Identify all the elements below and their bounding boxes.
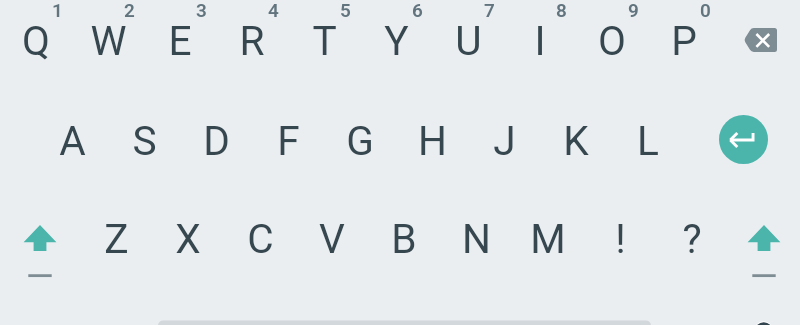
staticText: I bbox=[534, 17, 546, 65]
staticText: 3 bbox=[196, 0, 207, 21]
staticText: 0 bbox=[700, 0, 711, 21]
staticText: O bbox=[598, 17, 626, 65]
button[interactable]: T bbox=[288, 4, 360, 96]
button[interactable]: V bbox=[296, 198, 368, 294]
button[interactable]: C bbox=[224, 198, 296, 294]
staticText: H bbox=[418, 117, 447, 165]
button[interactable]: B bbox=[368, 198, 440, 294]
button[interactable]: S bbox=[108, 100, 180, 196]
staticText: ! bbox=[615, 215, 626, 263]
staticText: 2 bbox=[124, 0, 135, 21]
staticText: D bbox=[203, 117, 230, 165]
staticText: V bbox=[319, 215, 345, 263]
staticText: K bbox=[563, 117, 589, 165]
staticText: A bbox=[59, 117, 86, 165]
staticText: 9 bbox=[628, 0, 639, 21]
staticText: P bbox=[671, 17, 697, 65]
staticText: J bbox=[493, 117, 516, 165]
staticText: Y bbox=[384, 17, 409, 65]
staticText: S bbox=[132, 117, 157, 165]
button[interactable]: D bbox=[180, 100, 252, 196]
staticText: X bbox=[175, 215, 201, 263]
button[interactable]: Q bbox=[0, 4, 72, 96]
staticText: B bbox=[391, 215, 417, 263]
button[interactable]: N bbox=[440, 198, 512, 294]
staticText: F bbox=[277, 117, 300, 165]
staticText: T bbox=[312, 17, 337, 65]
button[interactable]: Delete bbox=[720, 4, 800, 96]
button[interactable]: H bbox=[396, 100, 468, 196]
button[interactable]: ? bbox=[656, 198, 728, 294]
staticText: 4 bbox=[268, 0, 279, 21]
button[interactable]: O bbox=[576, 4, 648, 96]
button[interactable]: W bbox=[72, 4, 144, 96]
button[interactable]: Enter bbox=[684, 100, 800, 196]
button[interactable]: ! bbox=[584, 198, 656, 294]
button[interactable]: K bbox=[540, 100, 612, 196]
button[interactable]: R bbox=[216, 4, 288, 96]
staticText: 6 bbox=[412, 0, 423, 21]
staticText: U bbox=[455, 17, 482, 65]
button[interactable]: Y bbox=[360, 4, 432, 96]
button[interactable]: Z bbox=[80, 198, 152, 294]
button[interactable]: A bbox=[36, 100, 108, 196]
staticText: Q bbox=[22, 17, 50, 65]
button[interactable]: U bbox=[432, 4, 504, 96]
staticText: C bbox=[247, 215, 274, 263]
staticText: W bbox=[90, 17, 127, 65]
staticText: ? bbox=[682, 215, 702, 263]
button[interactable]: J bbox=[468, 100, 540, 196]
button[interactable]: Shift bbox=[0, 198, 80, 294]
button[interactable]: Shift bbox=[728, 198, 800, 294]
button[interactable]: L bbox=[612, 100, 684, 196]
staticText: M bbox=[530, 215, 566, 263]
button[interactable]: Emoji bbox=[728, 296, 800, 325]
staticText: R bbox=[239, 17, 265, 65]
staticText: 7 bbox=[484, 0, 495, 21]
staticText: 1 bbox=[52, 0, 63, 21]
staticText: E bbox=[168, 17, 192, 65]
staticText: L bbox=[637, 117, 659, 165]
staticText: 8 bbox=[556, 0, 567, 21]
staticText: Z bbox=[104, 215, 129, 263]
button[interactable]: G bbox=[324, 100, 396, 196]
button[interactable]: X bbox=[152, 198, 224, 294]
button[interactable]: F bbox=[252, 100, 324, 196]
button[interactable]: M bbox=[512, 198, 584, 294]
staticText: G bbox=[346, 117, 374, 165]
button[interactable]: P bbox=[648, 4, 720, 96]
button[interactable]: Space bbox=[158, 296, 651, 325]
button[interactable]: E bbox=[144, 4, 216, 96]
staticText: N bbox=[462, 215, 491, 263]
button[interactable]: I bbox=[504, 4, 576, 96]
staticText: 5 bbox=[340, 0, 351, 21]
